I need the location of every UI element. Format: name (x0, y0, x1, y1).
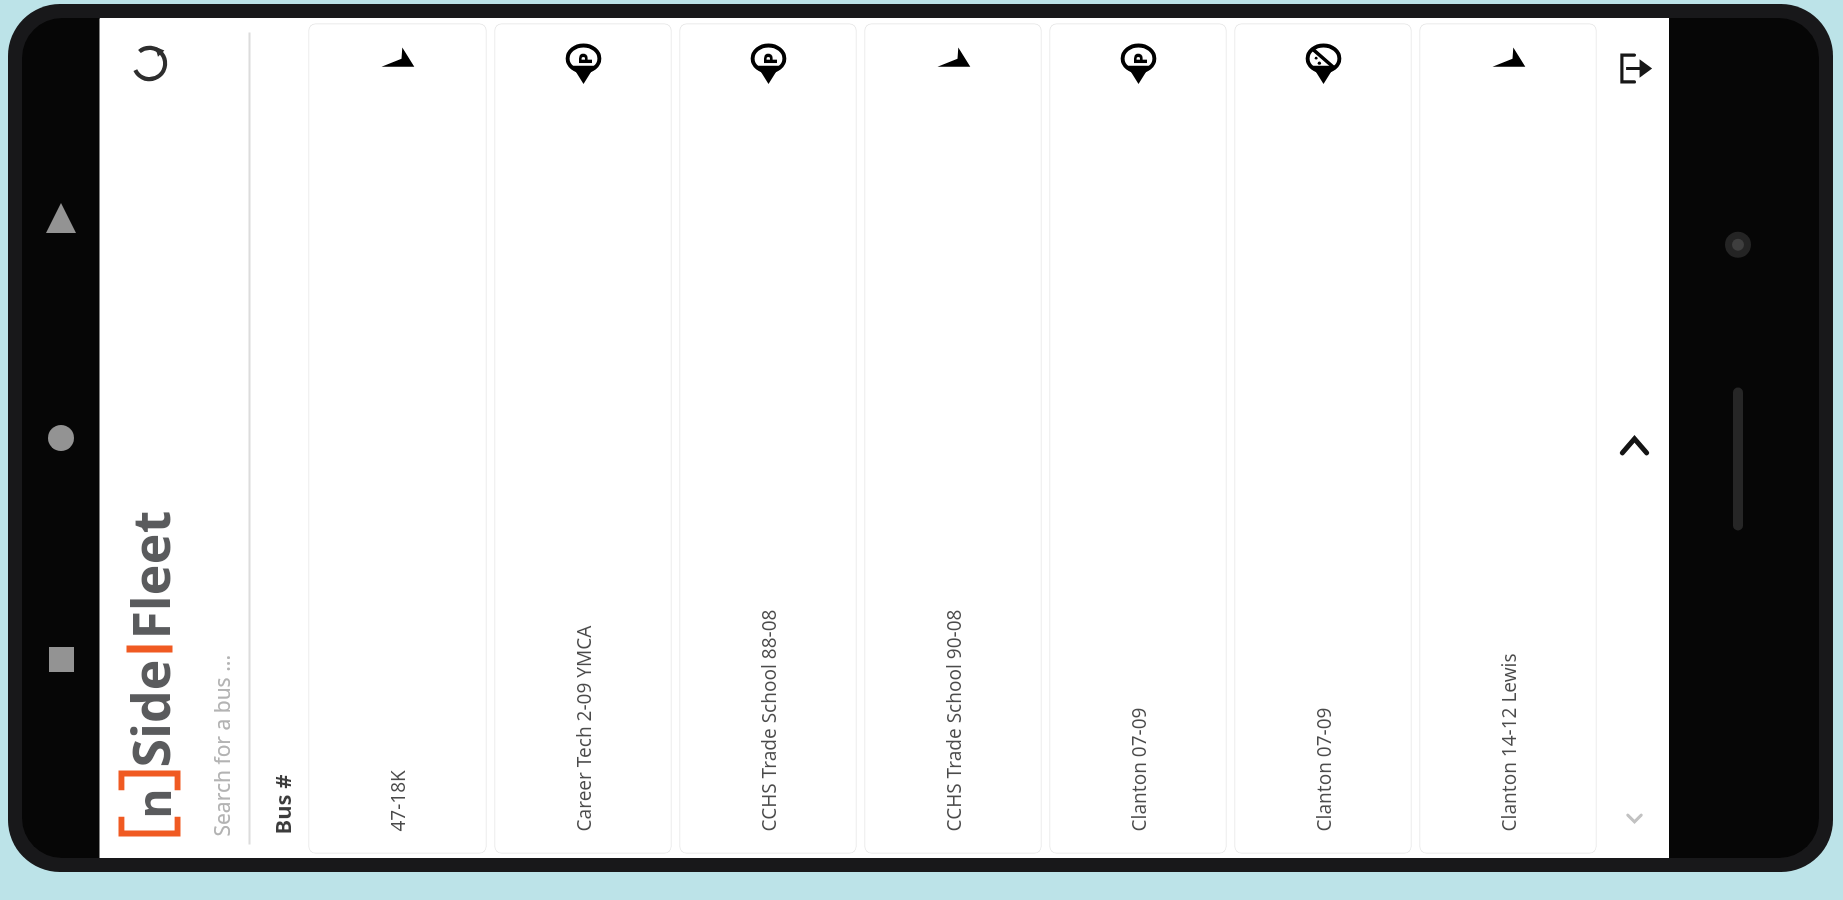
button[interactable]: Career Tech 2-09 YMCA (494, 23, 671, 853)
button[interactable]: Refresh (120, 34, 178, 92)
other: Bus moving (1488, 39, 1528, 79)
staticText: Clanton 07-09 (1125, 85, 1151, 831)
other: Bus moving (933, 39, 973, 79)
button[interactable]: Back (40, 197, 82, 239)
staticText: P (571, 52, 596, 64)
button[interactable]: Download (1606, 40, 1662, 96)
other: Bus offline (1300, 39, 1346, 85)
button[interactable]: 47-18K (308, 23, 486, 853)
button[interactable]: Clanton 07-09 (1049, 23, 1226, 853)
staticText: Search for a bus ... (207, 654, 236, 836)
staticText: CCHS Trade School 88-08 (755, 85, 781, 831)
staticText: P (756, 52, 781, 64)
button[interactable]: Clanton 14-12 Lewis (1419, 23, 1596, 853)
button[interactable]: CCHS Trade School 90-08 (864, 23, 1041, 853)
button[interactable]: Recents (40, 638, 82, 680)
staticText: 47-18K (384, 79, 410, 831)
button[interactable]: Clanton 07-09 (1234, 23, 1411, 853)
staticText: Fleet (113, 510, 184, 639)
button[interactable]: CCHS Trade School 88-08 (679, 23, 856, 853)
other: Bus moving (377, 39, 417, 79)
button[interactable]: Home (40, 417, 82, 459)
staticText: P (1126, 52, 1151, 64)
staticText: Career Tech 2-09 YMCA (570, 85, 596, 831)
other: Bus parked (1115, 39, 1161, 85)
staticText: n (121, 788, 184, 818)
staticText: Side (113, 658, 184, 767)
button[interactable]: Previous page (1612, 796, 1656, 840)
button[interactable]: Next page (1606, 418, 1662, 474)
staticText: Clanton 14-12 Lewis (1495, 79, 1521, 831)
staticText: Clanton 07-09 (1310, 85, 1336, 831)
staticText: CCHS Trade School 90-08 (940, 79, 966, 831)
other: Bus parked (745, 39, 791, 85)
staticText: Bus # (266, 774, 296, 834)
other: Bus parked (560, 39, 606, 85)
button[interactable]: Search for a bus ... (192, 18, 250, 858)
